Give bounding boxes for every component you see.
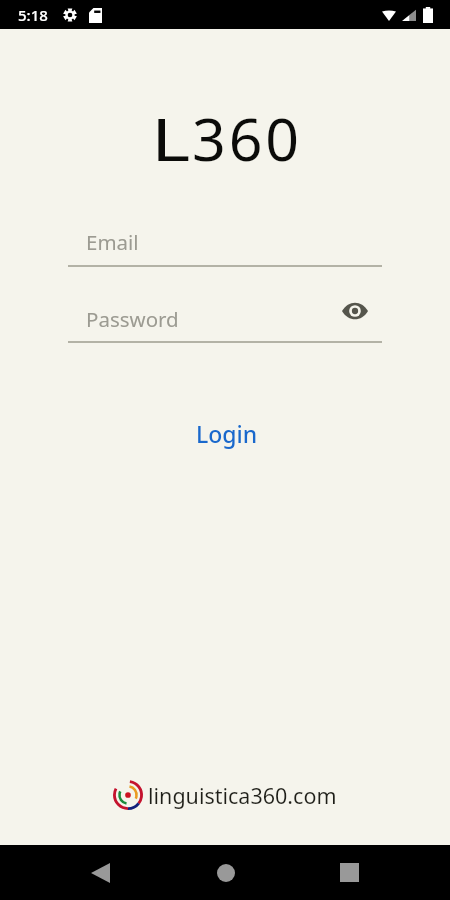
staticText: linguistica360.com: [148, 781, 337, 810]
staticText: 360: [192, 98, 302, 178]
button[interactable]: Recents: [322, 845, 377, 900]
staticText: Email: [86, 228, 139, 256]
staticText: Login: [196, 418, 258, 449]
staticText: Password: [86, 305, 179, 333]
button[interactable]: linguistica360.com: [113, 780, 337, 810]
button[interactable]: Back: [73, 845, 128, 900]
staticText: L: [151, 98, 190, 178]
staticText: 5:18: [18, 5, 48, 25]
button[interactable]: Password: [68, 305, 382, 343]
button[interactable]: Login: [2, 416, 450, 450]
button[interactable]: Email: [68, 228, 382, 267]
button[interactable]: Show password: [334, 290, 375, 331]
button[interactable]: Home: [198, 845, 253, 900]
